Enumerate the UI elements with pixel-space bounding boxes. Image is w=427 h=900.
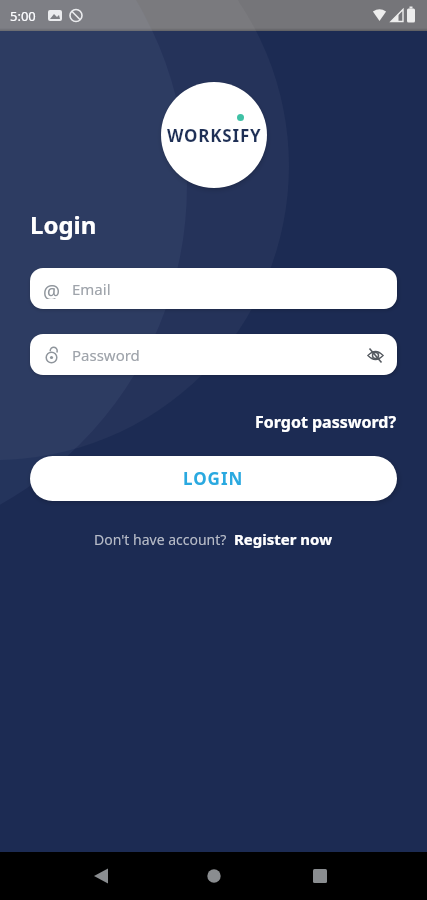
button[interactable]	[92, 866, 112, 886]
staticText: Login	[30, 208, 97, 241]
staticText: LOGIN	[183, 467, 244, 490]
staticText: Password	[72, 345, 363, 365]
button[interactable]: Forgot password?	[255, 411, 397, 433]
button[interactable]: Register now	[234, 529, 333, 549]
button[interactable]: LOGIN	[30, 456, 397, 501]
staticText: Email	[72, 279, 111, 299]
button[interactable]	[310, 866, 330, 886]
staticText: 5:00	[10, 7, 36, 25]
staticText: Don't have account?	[94, 530, 234, 549]
button[interactable]: @	[30, 268, 397, 309]
button[interactable]: Password	[30, 334, 397, 375]
button[interactable]	[363, 343, 387, 367]
staticText: WORKSIFY	[167, 124, 262, 147]
button[interactable]	[204, 866, 224, 886]
staticText: @	[43, 279, 61, 299]
